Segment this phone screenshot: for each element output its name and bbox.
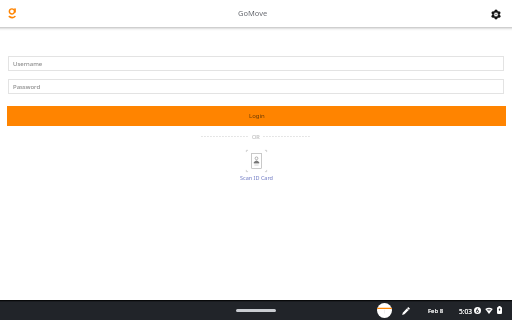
staticText: Scan ID Card [240, 174, 273, 181]
staticText: 5:03 [459, 307, 472, 316]
button[interactable]: App launcher [377, 303, 392, 318]
button[interactable]: Stylus [402, 307, 410, 315]
staticText: OR [252, 133, 260, 140]
button[interactable]: Notifications [474, 307, 481, 314]
staticText: Password [13, 83, 41, 91]
staticText: Username [13, 60, 43, 68]
button[interactable]: Settings [488, 6, 504, 22]
staticText: Login [249, 112, 265, 120]
staticText: GoMove [238, 8, 268, 18]
button[interactable]: Username [8, 56, 504, 71]
button[interactable]: Login [7, 106, 506, 126]
button[interactable]: Battery [497, 306, 502, 314]
button[interactable]: Wi-Fi [485, 307, 493, 314]
button[interactable]: Password [8, 79, 504, 94]
button[interactable]: Scan ID Card [240, 150, 273, 181]
staticText: Feb 8 [428, 307, 444, 315]
button[interactable]: Home [236, 309, 276, 312]
button[interactable]: GoMove logo [7, 6, 17, 19]
